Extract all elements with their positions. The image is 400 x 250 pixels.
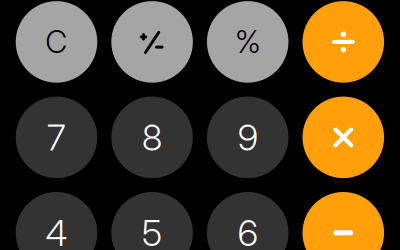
button[interactable]: 7 [16,96,97,178]
button[interactable]: 8 [111,96,193,178]
staticText: 8 [142,116,162,159]
staticText: 7 [47,116,66,159]
button[interactable]: C [16,1,97,83]
button[interactable]: 4 [16,192,97,250]
staticText: 6 [238,211,258,250]
button[interactable]: Divide [302,1,384,83]
staticText: % [235,23,260,60]
button[interactable]: Plus Minus [111,1,193,83]
button[interactable]: 5 [111,192,193,250]
staticText: C [45,23,67,60]
staticText: 4 [45,211,67,250]
staticText: 5 [142,211,162,250]
button[interactable]: 9 [207,96,288,178]
button[interactable]: 6 [207,192,288,250]
button[interactable]: Multiply [302,96,384,178]
staticText: 9 [238,116,258,159]
button[interactable]: % [207,1,288,83]
button[interactable]: Minus [302,192,384,250]
